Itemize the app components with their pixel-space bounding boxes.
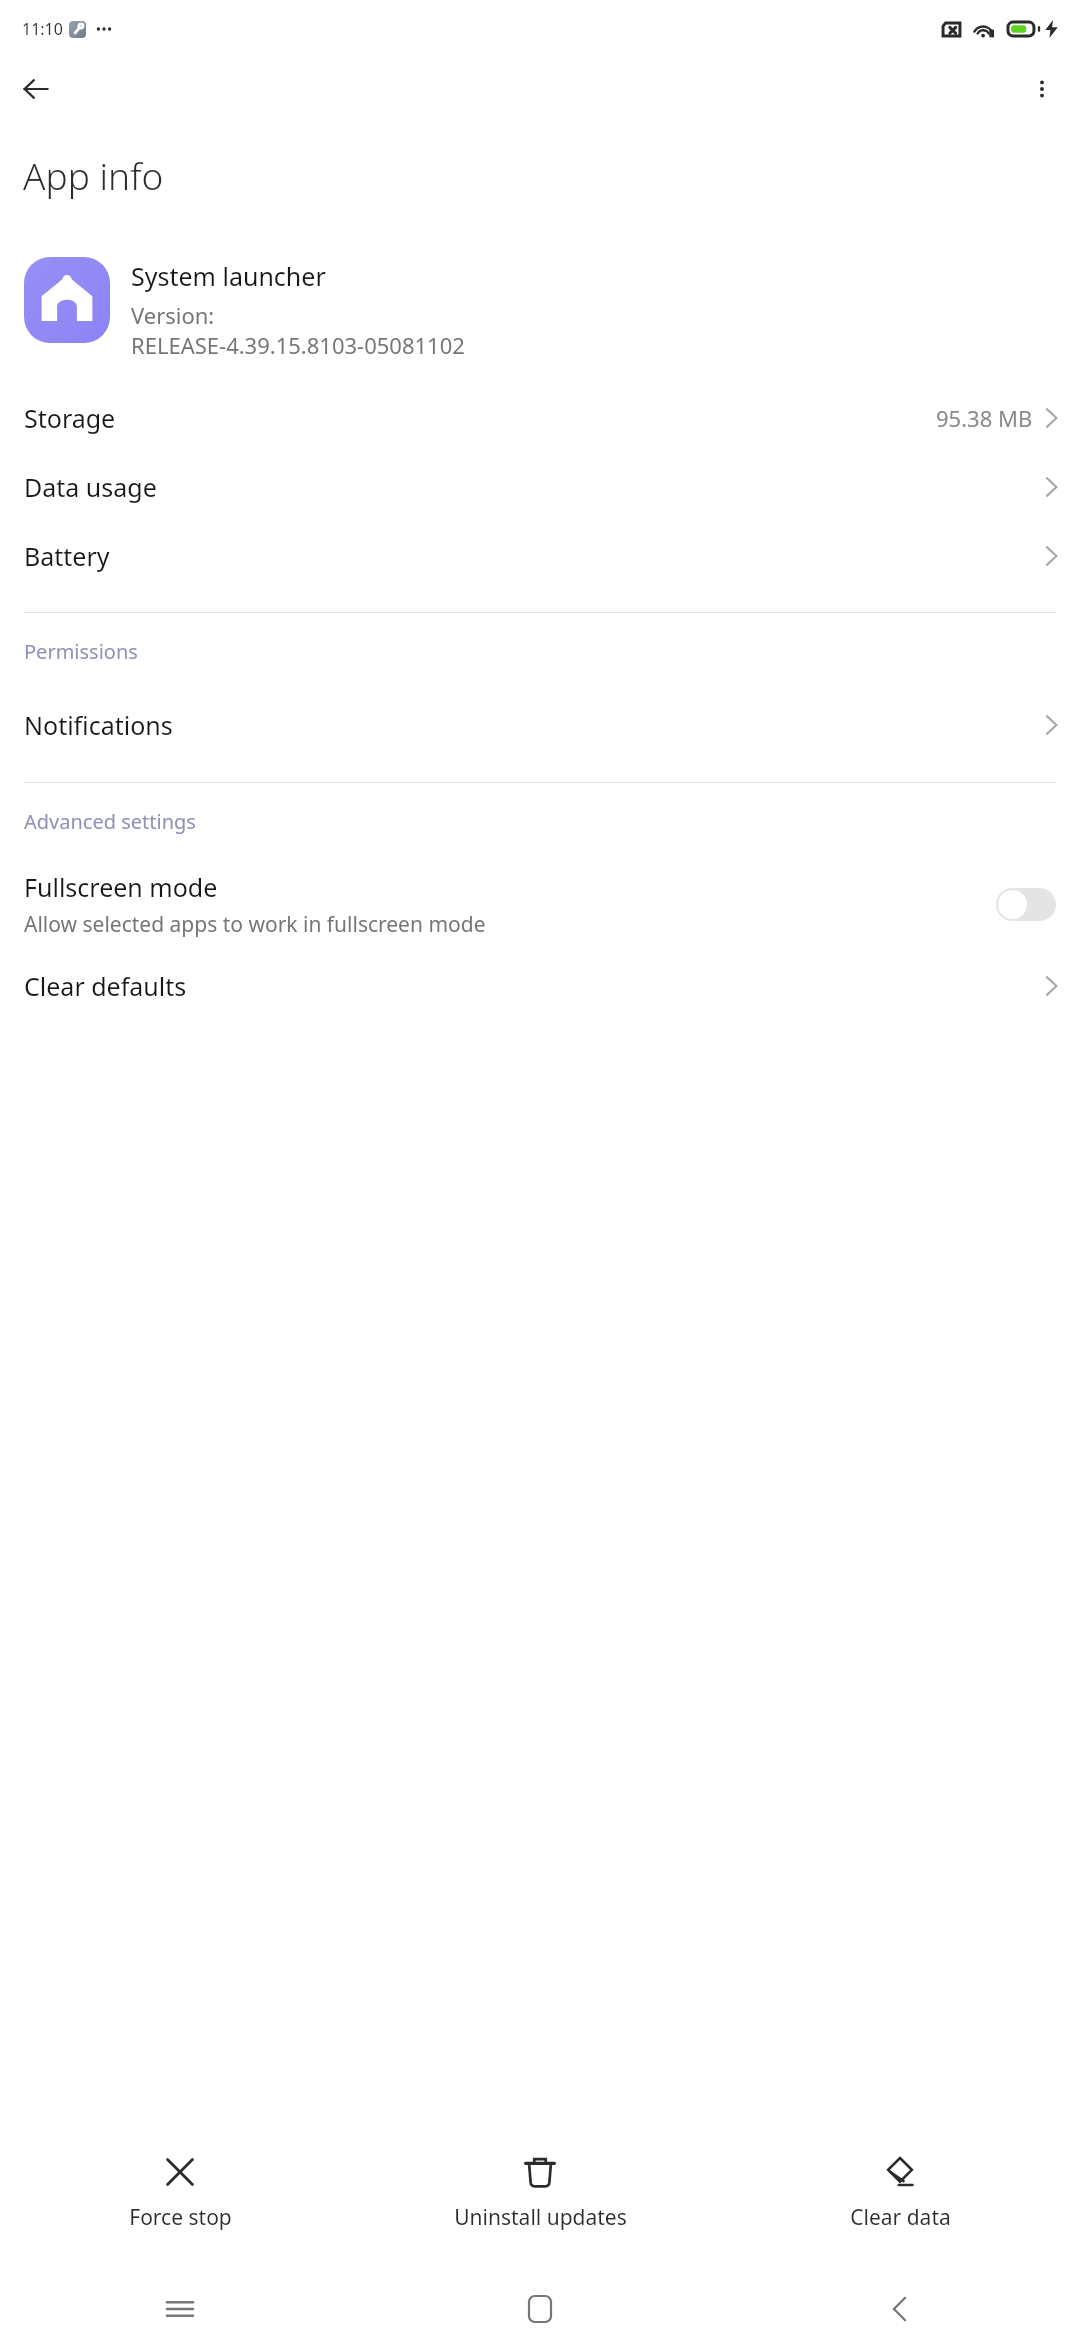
staticText: 11:10 [22, 18, 63, 40]
staticText: Notifications [24, 708, 173, 742]
staticText: Permissions [24, 638, 138, 665]
staticText: System launcher [131, 259, 326, 293]
button[interactable]: Fullscreen mode [0, 860, 1080, 951]
staticText: Advanced settings [24, 808, 196, 835]
button[interactable]: Battery [0, 521, 1080, 590]
button[interactable]: Uninstall updates [360, 2148, 720, 2238]
button[interactable]: Storage [0, 383, 1080, 452]
button[interactable]: Clear data [720, 2148, 1080, 2238]
staticText: Uninstall updates [454, 2203, 627, 2232]
staticText: Storage [24, 401, 116, 435]
button[interactable]: Force stop [0, 2148, 360, 2238]
button[interactable]: Fullscreen mode toggle [996, 888, 1056, 921]
button[interactable]: Notifications [0, 690, 1080, 759]
staticText: App info [23, 150, 164, 200]
staticText: Clear defaults [24, 969, 187, 1003]
button[interactable]: Recent apps [0, 2278, 360, 2340]
button[interactable]: Clear defaults [0, 951, 1080, 1020]
staticText: Data usage [24, 470, 157, 504]
staticText: Allow selected apps to work in fullscree… [24, 910, 486, 939]
button[interactable]: More options [1016, 63, 1068, 115]
button[interactable]: Data usage [0, 452, 1080, 521]
staticText: RELEASE-4.39.15.8103-05081102 [131, 330, 465, 360]
button[interactable]: Back [10, 63, 62, 115]
staticText: 95.38 MB [936, 403, 1033, 433]
button[interactable]: Home [360, 2278, 720, 2340]
button[interactable]: Back [720, 2278, 1080, 2340]
staticText: Version: [131, 300, 215, 330]
staticText: Battery [24, 539, 110, 573]
staticText: Force stop [129, 2203, 232, 2232]
staticText: Clear data [850, 2203, 951, 2232]
staticText: Fullscreen mode [24, 870, 218, 904]
